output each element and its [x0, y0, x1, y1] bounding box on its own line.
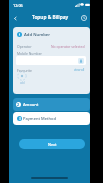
button[interactable]: 2	[13, 98, 90, 111]
button[interactable]: Pick contact	[78, 58, 84, 64]
staticText: Amount	[23, 102, 39, 107]
button[interactable]: 3	[13, 112, 90, 125]
staticText: Operator	[17, 44, 32, 49]
button[interactable]: Add Number	[13, 27, 90, 94]
staticText: add	[20, 81, 25, 85]
staticText: Add Number	[24, 32, 51, 38]
staticText: Mobile Number	[17, 51, 42, 56]
staticText: 3	[19, 117, 21, 121]
staticText: Topup & Billpay	[32, 14, 69, 21]
button[interactable]: Back	[10, 13, 20, 23]
staticText: Payment Method	[23, 116, 56, 121]
staticText: No operator selected	[51, 44, 85, 49]
staticText: Next	[48, 142, 57, 147]
staticText: Favourite	[17, 68, 32, 73]
staticText: view all	[74, 68, 85, 72]
button[interactable]: History	[79, 13, 89, 23]
button[interactable]: Next	[19, 139, 85, 149]
staticText: 2	[17, 102, 20, 107]
staticText: 12:06	[13, 3, 23, 8]
button[interactable]: Add favourite	[16, 71, 28, 83]
button[interactable]: Pick contact	[16, 56, 86, 65]
